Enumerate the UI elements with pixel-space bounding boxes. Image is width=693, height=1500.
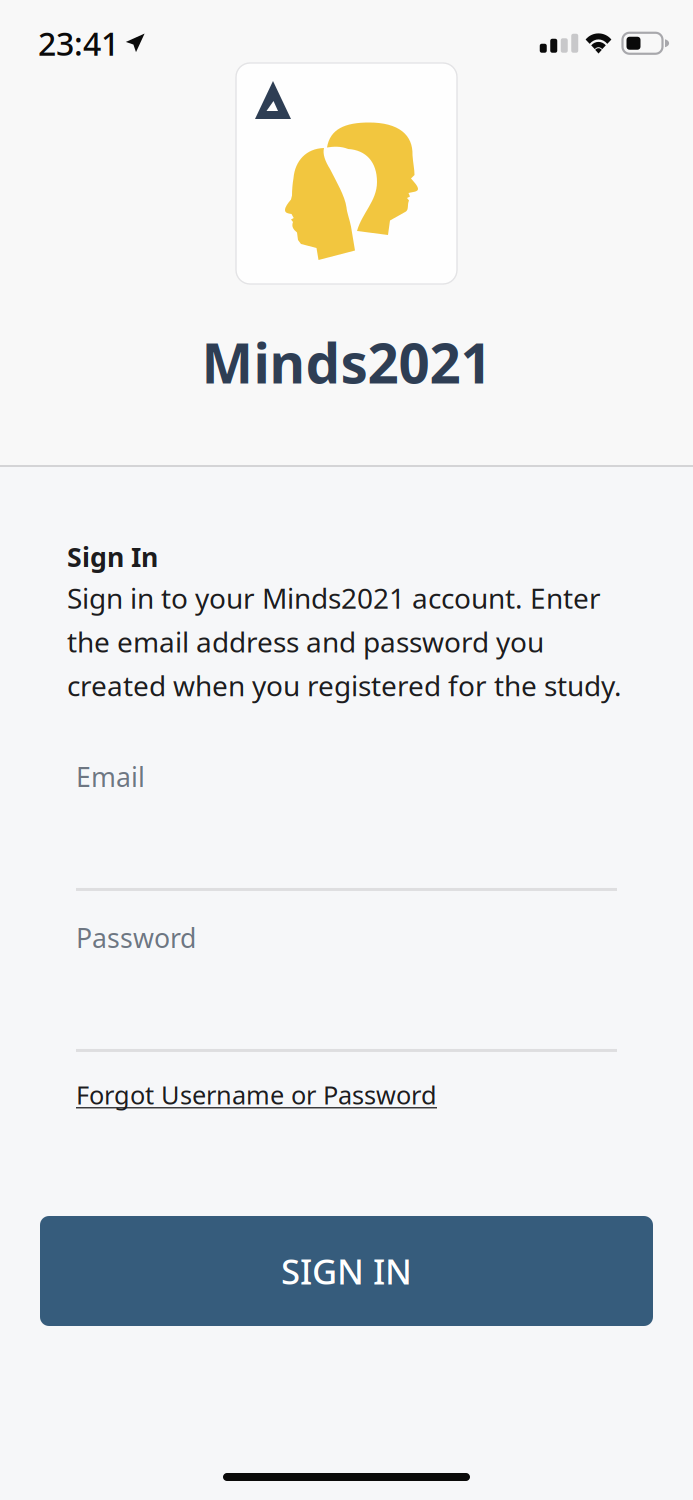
button[interactable]: Forgot Username or Password (67, 1052, 437, 1118)
staticText: Minds2021 (201, 326, 491, 399)
staticText: Email (76, 759, 145, 794)
staticText: Sign in to your Minds2021 account. Enter… (67, 579, 622, 704)
button[interactable]: Password (67, 909, 626, 1052)
button[interactable]: SIGN IN (40, 1216, 653, 1326)
staticText: 23:41 (38, 22, 119, 64)
button[interactable]: Email (67, 748, 626, 891)
staticText: Password (76, 920, 196, 955)
staticText: SIGN IN (281, 1248, 412, 1294)
staticText: Sign In (67, 539, 158, 574)
staticText: Forgot Username or Password (76, 1078, 437, 1112)
